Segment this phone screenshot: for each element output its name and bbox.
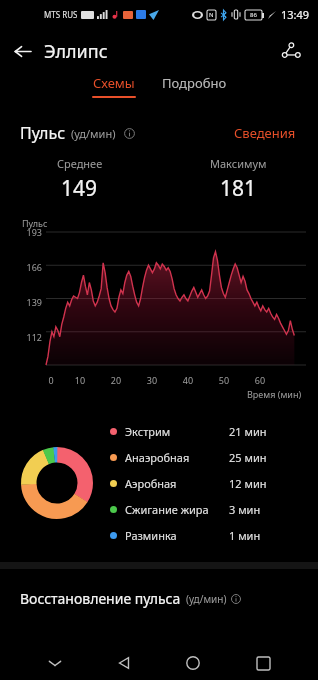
staticText: 60 <box>242 374 278 386</box>
button[interactable]: Максимум <box>159 156 318 203</box>
staticText: Восстановление пульса <box>20 589 181 608</box>
staticText: 112 <box>0 331 42 343</box>
button[interactable]: Подробно <box>156 74 233 92</box>
staticText: Подробно <box>162 74 227 92</box>
staticText: Пульс <box>20 122 66 144</box>
staticText: 181 <box>220 174 257 203</box>
staticText: 139 <box>0 296 42 308</box>
staticText: Сжигание жира <box>125 502 209 517</box>
button[interactable]: Info <box>121 125 137 141</box>
staticText: 1 мин <box>229 528 261 543</box>
button[interactable]: Back <box>0 29 44 73</box>
staticText: Схемы <box>93 74 135 92</box>
staticText: 86 <box>250 11 257 19</box>
button[interactable]: Home <box>158 646 228 680</box>
staticText: Разминка <box>125 528 177 543</box>
staticText: Анаэробная <box>125 450 190 465</box>
staticText: 40 <box>170 374 206 386</box>
button[interactable]: Анаэробная <box>110 444 302 470</box>
staticText: Максимум <box>210 156 267 171</box>
staticText: (уд/мин) <box>71 126 116 141</box>
staticText: Время (мин) <box>247 388 302 400</box>
button[interactable]: Share <box>270 30 312 72</box>
staticText: (уд/мин) <box>186 592 227 606</box>
staticText: 0 <box>40 374 62 386</box>
button[interactable]: Сжигание жира <box>110 496 302 522</box>
staticText: 20 <box>98 374 134 386</box>
button[interactable]: Схемы <box>86 74 142 98</box>
staticText: N <box>209 11 214 19</box>
staticText: Эллипс <box>44 39 108 64</box>
staticText: MTS RUS <box>44 9 78 20</box>
staticText: Пульс <box>22 217 48 229</box>
staticText: 10 <box>62 374 98 386</box>
staticText: 13:49 <box>281 7 310 22</box>
button[interactable]: Аэробная <box>110 470 302 496</box>
staticText: 12 мин <box>229 476 267 491</box>
button[interactable]: Восстановление пульса <box>20 589 298 608</box>
staticText: 149 <box>61 174 98 203</box>
button[interactable]: Разминка <box>110 522 302 548</box>
staticText: Среднее <box>57 156 103 171</box>
button[interactable]: Hide keyboard <box>20 646 89 680</box>
staticText: 193 <box>0 226 42 238</box>
button[interactable]: Recents <box>228 646 298 680</box>
staticText: Сведения <box>234 124 296 142</box>
button[interactable]: Сведения <box>232 122 298 144</box>
staticText: 21 мин <box>229 424 267 439</box>
button[interactable]: Back <box>89 646 158 680</box>
staticText: 30 <box>134 374 170 386</box>
staticText: 50 <box>206 374 242 386</box>
button[interactable]: Экстрим <box>110 418 302 444</box>
staticText: Экстрим <box>125 424 171 439</box>
staticText: 3 мин <box>229 502 261 517</box>
staticText: Аэробная <box>125 476 177 491</box>
staticText: 25 мин <box>229 450 267 465</box>
staticText: 166 <box>0 261 42 273</box>
button[interactable]: Среднее <box>0 156 159 203</box>
